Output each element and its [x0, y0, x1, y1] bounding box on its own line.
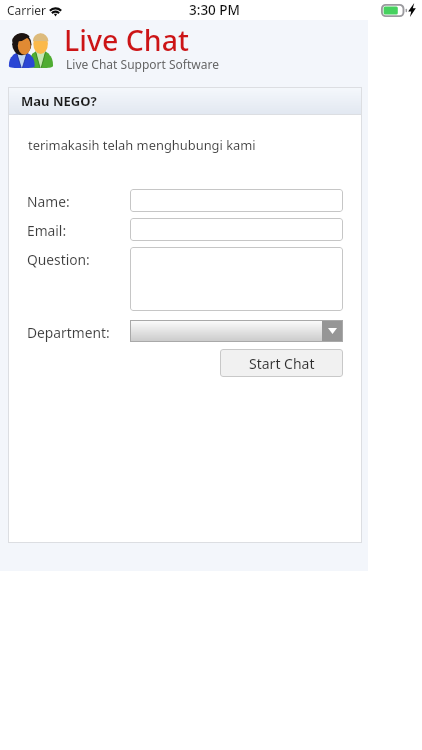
button[interactable]: Question input field: [130, 247, 343, 311]
staticText: terimakasih telah menghubungi kami: [28, 136, 256, 154]
staticText: Carrier: [7, 2, 47, 18]
staticText: 3:30 PM: [189, 1, 240, 19]
staticText: Live Chat Support Software: [66, 56, 219, 72]
staticText: Question:: [27, 250, 90, 269]
staticText: Mau NEGO?: [21, 92, 97, 110]
staticText: Email:: [27, 221, 67, 240]
button[interactable]: Open department dropdown: [322, 320, 343, 342]
staticText: Department:: [27, 323, 110, 342]
button[interactable]: Name input field: [130, 189, 343, 212]
button[interactable]: Department selector: [130, 320, 343, 342]
staticText: Start Chat: [249, 354, 315, 373]
staticText: Live Chat: [64, 21, 189, 60]
button[interactable]: Email input field: [130, 218, 343, 241]
staticText: Name:: [27, 192, 70, 211]
button[interactable]: Start Chat: [220, 349, 343, 377]
